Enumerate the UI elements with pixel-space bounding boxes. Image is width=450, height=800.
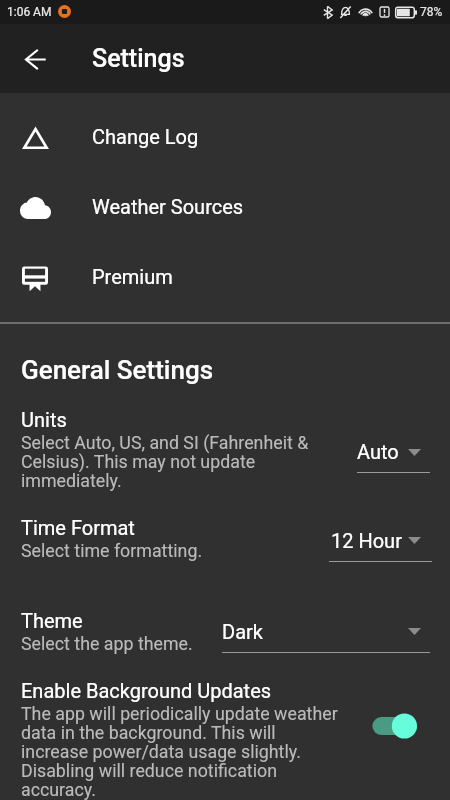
staticText: Change Log [92, 125, 199, 148]
staticText: 12 Hour [331, 529, 402, 552]
button[interactable]: Change Log [0, 101, 450, 171]
button[interactable]: Enable Background Updates [21, 679, 342, 800]
staticText: 1:06 AM [7, 5, 52, 19]
staticText: Dark [222, 620, 263, 643]
staticText: The app will periodically update weather… [21, 703, 342, 800]
button[interactable]: Premium [0, 241, 450, 311]
staticText: Weather Sources [92, 195, 244, 218]
staticText: Time Format [21, 516, 135, 539]
staticText: Select the app theme. [21, 633, 193, 654]
button[interactable]: Auto [351, 428, 436, 480]
staticText: Enable Background Updates [21, 679, 272, 702]
staticText: 78% [420, 5, 443, 19]
button[interactable]: Weather Sources [0, 171, 450, 241]
button[interactable]: 12 Hour [323, 517, 438, 569]
button[interactable]: Navigate up [15, 39, 55, 79]
staticText: Select Auto, US, and SI (Fahrenheit & Ce… [21, 432, 342, 492]
staticText: Select time formatting. [21, 540, 203, 561]
staticText: Premium [92, 265, 173, 288]
button[interactable]: Theme [21, 609, 342, 654]
staticText: Theme [21, 609, 83, 632]
staticText: Units [21, 408, 67, 431]
button[interactable]: Enable Background Updates [364, 708, 426, 744]
staticText: Settings [92, 44, 185, 73]
staticText: Auto [357, 440, 399, 463]
button[interactable]: Dark [216, 608, 436, 660]
button[interactable]: Time Format [21, 516, 342, 561]
staticText: General Settings [21, 355, 214, 385]
button[interactable]: Units [21, 408, 342, 492]
